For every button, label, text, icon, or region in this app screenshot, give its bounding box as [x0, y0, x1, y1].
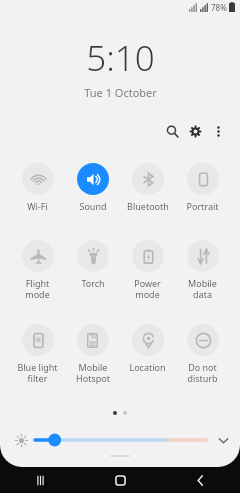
button[interactable]: Mobile Hotspot — [65, 323, 120, 385]
staticText: 5:10 — [86, 34, 155, 82]
button[interactable]: Blue light filter — [10, 323, 65, 385]
staticText: Bluetooth — [127, 200, 169, 212]
button[interactable]: Do not disturb — [175, 323, 230, 385]
staticText: Power mode — [134, 277, 161, 300]
button[interactable]: Sound — [65, 162, 120, 213]
button[interactable]: Portrait — [175, 162, 230, 213]
button[interactable]: Brightness slider — [35, 430, 206, 450]
staticText: 78% — [211, 2, 227, 13]
button[interactable]: Search — [161, 120, 184, 143]
button[interactable]: Brightness — [13, 432, 29, 448]
button[interactable]: More options — [207, 120, 230, 143]
button[interactable]: Power mode — [120, 239, 175, 301]
button[interactable]: Recent apps — [0, 467, 80, 493]
button[interactable]: Mobile data — [175, 239, 230, 301]
staticText: Blue light filter — [17, 361, 58, 384]
staticText: Sound — [79, 200, 107, 212]
staticText: Flight mode — [25, 277, 50, 300]
button[interactable]: Flight mode — [10, 239, 65, 301]
button[interactable]: Location — [120, 323, 175, 374]
staticText: Mobile data — [188, 277, 217, 300]
staticText: Torch — [81, 277, 105, 289]
staticText: Portrait — [186, 200, 219, 212]
staticText: Location — [129, 361, 166, 373]
button[interactable]: Back — [160, 467, 240, 493]
staticText: Wi-Fi — [27, 200, 48, 212]
button[interactable]: Home — [80, 467, 160, 493]
button[interactable]: Expand brightness settings — [214, 431, 232, 449]
staticText: Do not disturb — [187, 361, 218, 384]
button[interactable]: Torch — [65, 239, 120, 290]
button[interactable]: Settings — [184, 120, 207, 143]
button[interactable]: Bluetooth — [120, 162, 175, 213]
button[interactable]: Wi-Fi — [10, 162, 65, 213]
staticText: Mobile Hotspot — [76, 361, 110, 384]
staticText: Tue 1 October — [84, 85, 157, 100]
